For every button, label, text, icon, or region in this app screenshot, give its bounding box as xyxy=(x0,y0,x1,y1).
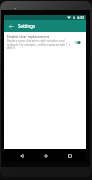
staticText: Enable char replacement xyxy=(7,34,49,39)
staticText: 4:33 xyxy=(77,15,85,20)
button[interactable]: Toggle char replacement xyxy=(73,40,82,45)
button[interactable]: Back xyxy=(10,149,34,162)
button[interactable]: Recents xyxy=(58,149,82,162)
button[interactable]: Navigate up xyxy=(4,20,18,32)
staticText: Settings xyxy=(18,23,36,29)
button[interactable]: Enable char replacement xyxy=(4,32,86,51)
button[interactable]: Home xyxy=(34,149,58,162)
staticText: Replace some characters with numbers and… xyxy=(7,39,72,49)
